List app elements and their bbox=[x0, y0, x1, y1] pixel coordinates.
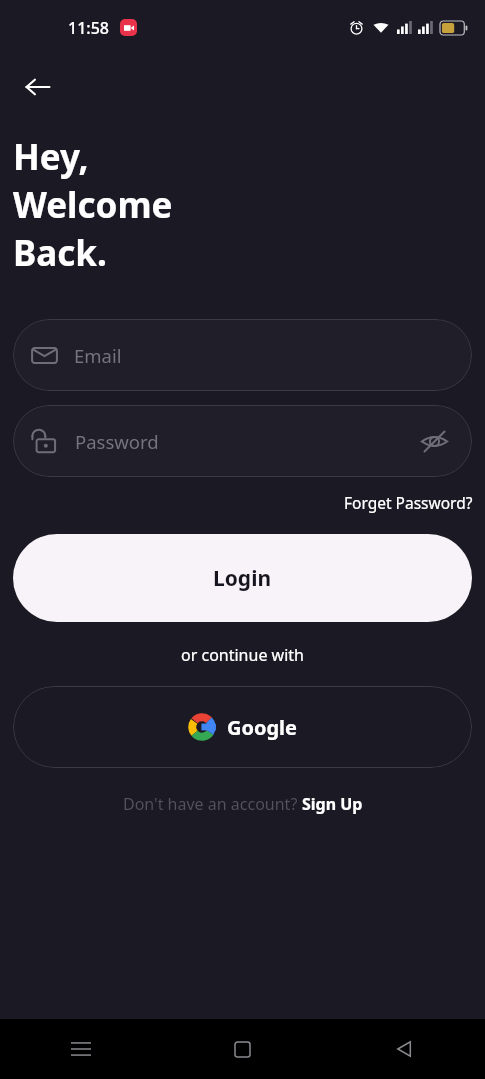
button[interactable]: Google bbox=[13, 686, 472, 768]
button[interactable]: Don't have an account? bbox=[0, 790, 485, 818]
staticText: 11:58 bbox=[68, 17, 109, 39]
staticText: Forget Password? bbox=[344, 492, 473, 513]
button[interactable]: Forget Password? bbox=[342, 489, 475, 516]
staticText: Hey, bbox=[13, 133, 89, 181]
staticText: Login bbox=[213, 564, 272, 593]
staticText: Welcome bbox=[13, 181, 173, 229]
staticText: Password bbox=[75, 429, 414, 454]
button[interactable]: Back bbox=[323, 1019, 485, 1079]
button[interactable]: Back bbox=[14, 63, 62, 111]
button[interactable]: Toggle password visibility bbox=[414, 421, 454, 461]
staticText: Sign Up bbox=[302, 793, 363, 815]
button[interactable]: Password bbox=[13, 405, 472, 477]
staticText: Google bbox=[227, 714, 298, 741]
staticText: Email bbox=[74, 343, 454, 368]
staticText: or continue with bbox=[181, 644, 304, 666]
button[interactable]: Recent apps bbox=[0, 1019, 161, 1079]
button[interactable]: Login bbox=[13, 534, 472, 622]
button[interactable]: Home bbox=[161, 1019, 323, 1079]
button[interactable]: Email bbox=[13, 319, 472, 391]
staticText: Back. bbox=[13, 229, 107, 277]
staticText: Don't have an account? bbox=[123, 793, 302, 815]
